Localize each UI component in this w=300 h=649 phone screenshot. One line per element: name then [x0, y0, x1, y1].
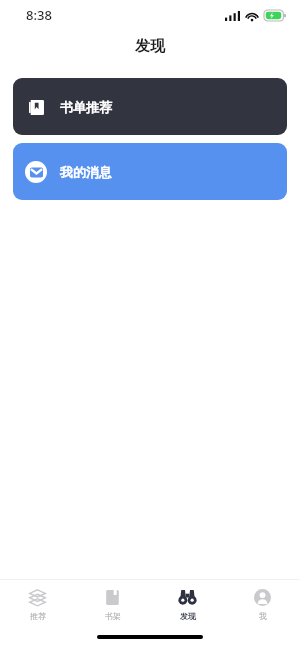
- staticText: 推荐: [30, 611, 46, 621]
- button[interactable]: 书架: [75, 580, 150, 630]
- button[interactable]: 推荐: [0, 580, 75, 630]
- staticText: 书单推荐: [60, 99, 112, 115]
- staticText: 发现: [135, 37, 165, 56]
- button[interactable]: 我: [225, 580, 300, 630]
- staticText: 发现: [180, 611, 196, 621]
- button[interactable]: 书单推荐: [13, 78, 287, 135]
- staticText: 8:38: [26, 6, 52, 24]
- staticText: 书架: [105, 611, 121, 621]
- button[interactable]: 我的消息: [13, 143, 287, 200]
- staticText: 我: [259, 611, 267, 621]
- staticText: 我的消息: [60, 164, 112, 180]
- button[interactable]: 发现: [150, 580, 225, 630]
